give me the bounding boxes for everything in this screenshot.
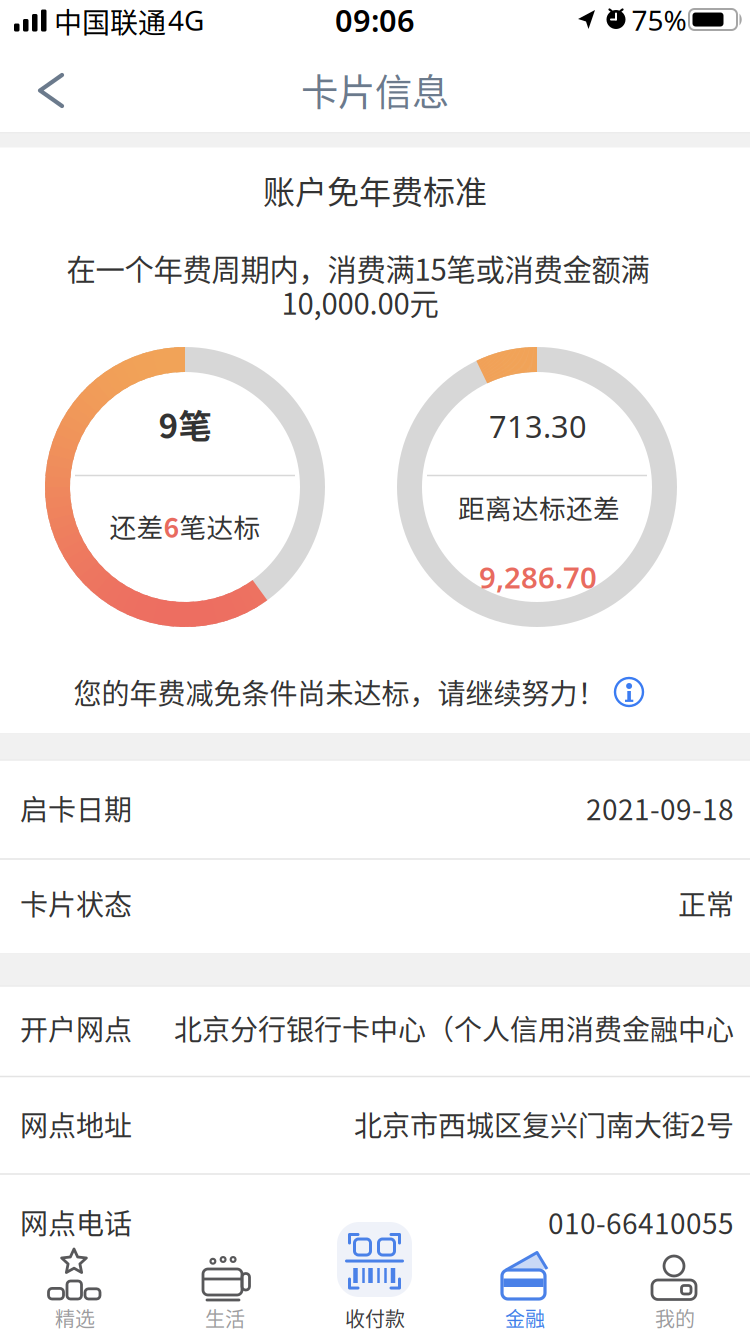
staticText: 账户免年费标准 [263,167,487,213]
staticText: 网点电话 [20,1202,132,1242]
staticText: 我的 [655,1303,695,1332]
staticText: 10,000.00元 [281,281,438,323]
staticText: 正常 [678,883,734,923]
staticText: 还差 [109,507,163,545]
staticText: 网点地址 [20,1104,132,1144]
staticText: 北京市西城区复兴门南大街2号 [354,1104,734,1144]
staticText: 713.30 [489,406,587,446]
staticText: 010-66410055 [548,1202,734,1242]
staticText: 卡片信息 [301,63,449,117]
staticText: 6 [163,507,179,545]
staticText: 09:06 [335,0,415,40]
staticText: 卡片状态 [20,883,132,923]
button[interactable]: 收付款 [300,1238,450,1334]
staticText: 在一个年费周期内，消费满15笔或消费金额满 [66,247,649,289]
button[interactable]: 年费说明 [613,676,644,707]
staticText: 2021-09-18 [586,788,734,828]
staticText: 您的年费减免条件尚未达标，请继续努力！ [73,672,605,712]
button[interactable]: 返回 [29,68,73,112]
staticText: 距离达标还差 [458,488,620,526]
button[interactable]: 精选 [0,1238,150,1334]
staticText: 4G [168,1,204,39]
button[interactable]: 金融 [450,1238,600,1334]
staticText: 金融 [505,1303,545,1332]
staticText: 9,286.70 [479,557,597,596]
staticText: 生活 [205,1303,245,1332]
staticText: 9笔 [158,400,211,448]
staticText: 收付款 [345,1303,405,1332]
staticText: 精选 [55,1303,95,1332]
staticText: 北京分行银行卡中心（个人信用消费金融中心 [174,1008,734,1048]
staticText: 中国联通 [54,1,166,41]
button[interactable]: 我的 [600,1238,750,1334]
staticText: 笔达标 [179,507,260,545]
staticText: 开户网点 [20,1008,132,1048]
staticText: 启卡日期 [20,788,132,828]
staticText: 75% [631,1,686,39]
button[interactable]: 生活 [150,1238,300,1334]
